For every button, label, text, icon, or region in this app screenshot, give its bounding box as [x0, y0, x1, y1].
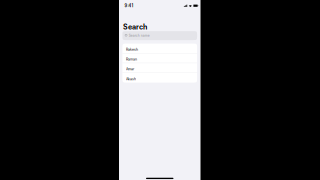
staticText: 9:41	[124, 3, 133, 8]
staticText: Rakesh	[126, 47, 138, 52]
staticText: Search	[123, 23, 147, 31]
staticText: Raman	[126, 57, 137, 61]
button[interactable]: Raman	[122, 53, 197, 63]
button[interactable]: Rakesh	[122, 44, 197, 53]
button[interactable]: Amar	[122, 63, 197, 73]
button[interactable]: Akash	[122, 73, 197, 83]
staticText: Akash	[126, 77, 136, 81]
staticText: Search name	[129, 34, 150, 38]
button[interactable]: Search name	[122, 31, 197, 40]
staticText: Amar	[126, 67, 134, 71]
